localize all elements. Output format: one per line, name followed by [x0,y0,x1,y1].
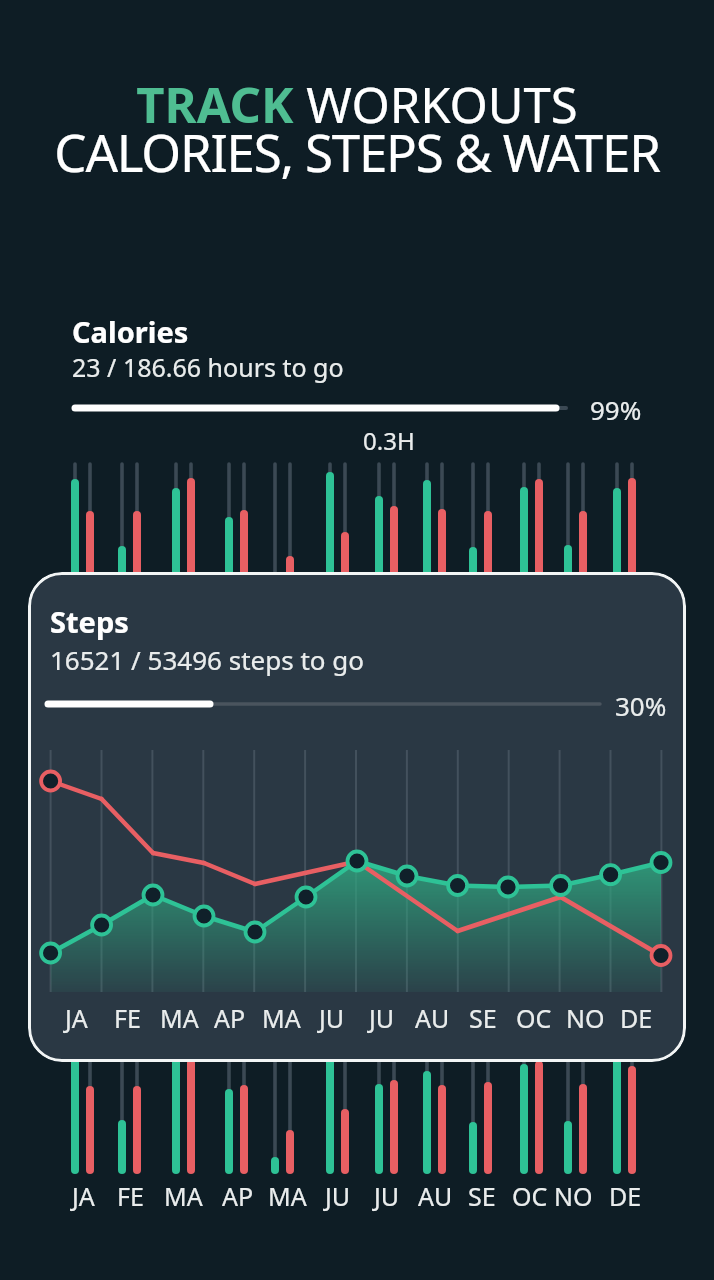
staticText: OC [512,1179,548,1213]
staticText: Steps [50,602,129,641]
staticText: JA [65,1001,88,1035]
staticText: AU [418,1179,453,1213]
staticText: CALORIES, STEPS & WATER [0,117,714,186]
staticText: DE [620,1001,653,1035]
button[interactable]: Steps [28,572,686,1062]
staticText: 23 / 186.66 hours to go [72,350,344,384]
staticText: JU [374,1179,400,1213]
staticText: 0.3H [363,424,415,457]
staticText: MA [160,1001,199,1035]
staticText: FE [114,1001,141,1035]
staticText: DE [609,1179,642,1213]
staticText: TRACK WORKOUTS [0,71,714,138]
staticText: JA [72,1179,95,1213]
staticText: NO [566,1001,605,1035]
staticText: MA [262,1001,301,1035]
staticText: MA [164,1179,203,1213]
staticText: AU [415,1001,450,1035]
staticText: JU [319,1001,345,1035]
staticText: JU [369,1001,395,1035]
staticText: 99% [590,392,642,427]
staticText: SE [468,1179,496,1213]
staticText: 16521 / 53496 steps to go [50,642,364,677]
staticText: FE [117,1179,144,1213]
staticText: AP [214,1001,246,1035]
staticText: JU [325,1179,351,1213]
staticText: Calories [72,312,189,351]
staticText: MA [268,1179,307,1213]
staticText: OC [516,1001,552,1035]
staticText: NO [554,1179,593,1213]
staticText: SE [469,1001,497,1035]
staticText: AP [222,1179,254,1213]
staticText: 30% [615,688,667,723]
